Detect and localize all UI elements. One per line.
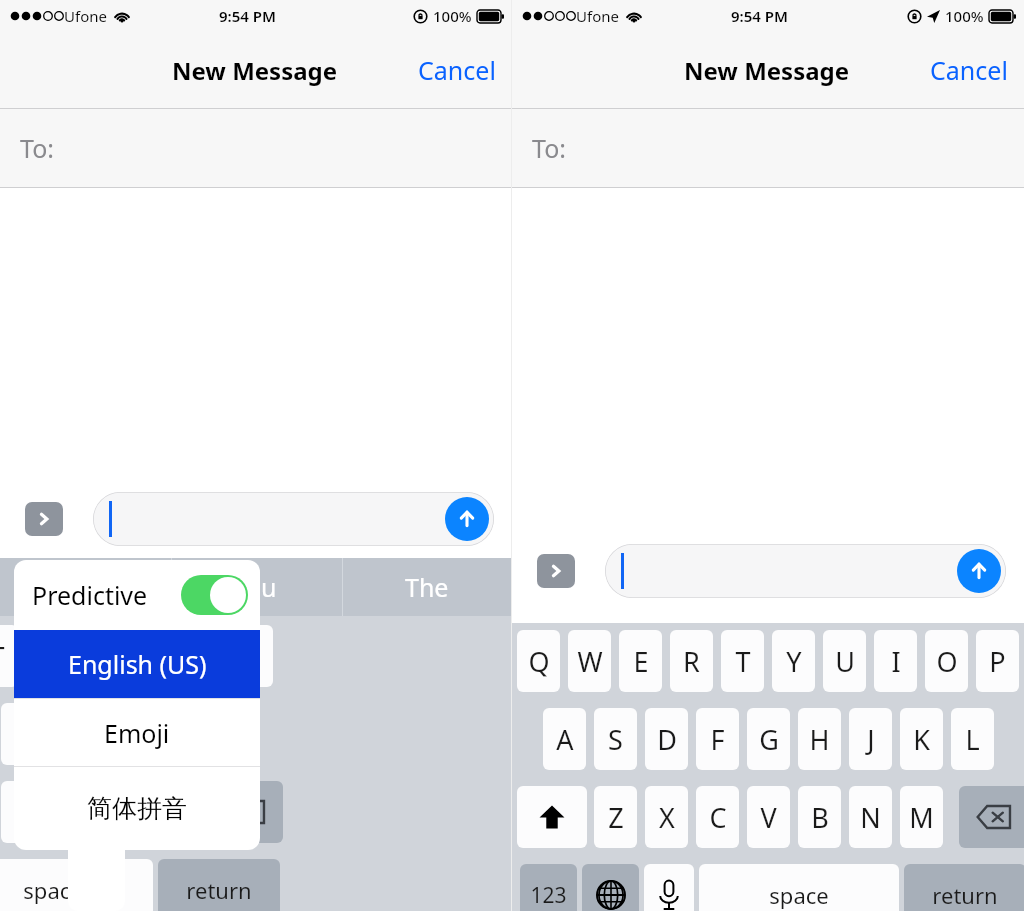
button[interactable]: return <box>158 859 280 911</box>
button[interactable]: K <box>154 703 197 765</box>
staticText: O <box>190 638 212 675</box>
button[interactable]: Backspace <box>213 781 283 843</box>
staticText: P <box>989 643 1006 680</box>
button[interactable]: S <box>594 708 637 770</box>
staticText: Ufone <box>576 6 619 26</box>
staticText: Predictive <box>32 578 148 612</box>
staticText: Cancel <box>930 53 1008 87</box>
button[interactable]: V <box>1 781 44 843</box>
button[interactable]: Predictive on <box>181 575 248 615</box>
button[interactable]: J <box>849 708 892 770</box>
button[interactable]: Predictive <box>14 560 260 630</box>
button[interactable]: Show apps <box>25 502 63 536</box>
staticText: 9:54 PM <box>731 6 788 26</box>
button[interactable]: G <box>1 703 44 765</box>
staticText: 9:54 PM <box>219 6 276 26</box>
button[interactable]: M <box>154 781 197 843</box>
button[interactable]: A <box>543 708 586 770</box>
button[interactable]: To: <box>512 109 1024 187</box>
staticText: D <box>657 721 677 758</box>
staticText: space <box>23 875 83 905</box>
staticText: 100% <box>945 6 984 26</box>
button[interactable]: B <box>52 781 95 843</box>
button[interactable]: To: <box>0 109 512 187</box>
button[interactable]: E <box>619 630 662 692</box>
button[interactable]: R <box>670 630 713 692</box>
button[interactable]: P <box>230 625 273 687</box>
button[interactable]: Cancel <box>914 41 1024 99</box>
button[interactable]: H <box>798 708 841 770</box>
button[interactable]: T <box>0 625 18 687</box>
button[interactable]: G <box>747 708 790 770</box>
button[interactable]: Show apps <box>537 554 575 588</box>
staticText: C <box>709 799 727 836</box>
button[interactable]: D <box>645 708 688 770</box>
button[interactable]: Emoji <box>14 699 260 766</box>
button[interactable]: Send <box>605 544 1006 598</box>
button[interactable]: English (US) <box>14 630 260 698</box>
button[interactable]: Q <box>517 630 560 692</box>
button[interactable]: Dictate <box>644 864 694 911</box>
button[interactable]: Z <box>594 786 637 848</box>
staticText: English (US) <box>68 647 207 681</box>
button[interactable]: N <box>849 786 892 848</box>
button[interactable]: L <box>951 708 994 770</box>
button[interactable]: space <box>699 864 899 911</box>
button[interactable]: Send <box>957 549 1001 593</box>
button[interactable]: 简体拼音 <box>14 767 260 850</box>
staticText: T <box>0 638 5 675</box>
button[interactable]: return <box>904 864 1024 911</box>
staticText: return <box>932 880 998 910</box>
button[interactable]: U <box>823 630 866 692</box>
staticText: To: <box>20 131 54 165</box>
staticText: W <box>577 643 603 680</box>
staticText: K <box>913 721 930 758</box>
button[interactable]: Y <box>772 630 815 692</box>
staticText: space <box>769 880 829 910</box>
button[interactable]: 123 <box>520 864 577 911</box>
button[interactable]: U <box>77 625 120 687</box>
button[interactable]: Backspace <box>959 786 1024 848</box>
button[interactable]: W <box>568 630 611 692</box>
button[interactable]: Shift <box>517 786 587 848</box>
staticText: To: <box>532 131 566 165</box>
button[interactable]: O <box>179 625 222 687</box>
staticText: M <box>909 799 934 836</box>
button[interactable]: C <box>696 786 739 848</box>
button[interactable]: X <box>645 786 688 848</box>
button[interactable]: N <box>103 781 146 843</box>
button[interactable]: J <box>103 703 146 765</box>
staticText: I <box>891 643 901 680</box>
button[interactable]: P <box>976 630 1019 692</box>
button[interactable]: Y <box>26 625 69 687</box>
button[interactable]: O <box>925 630 968 692</box>
button[interactable]: M <box>900 786 943 848</box>
button[interactable]: V <box>747 786 790 848</box>
button[interactable]: Switch keyboard <box>582 864 639 911</box>
button[interactable]: T <box>721 630 764 692</box>
button[interactable]: Send <box>445 497 489 541</box>
staticText: Y <box>786 643 802 680</box>
staticText: X <box>659 799 675 836</box>
button[interactable]: I <box>128 625 171 687</box>
staticText: return <box>186 875 252 905</box>
button[interactable]: K <box>900 708 943 770</box>
button[interactable]: F <box>696 708 739 770</box>
button[interactable]: space <box>0 859 153 911</box>
staticText: I <box>145 638 155 675</box>
button[interactable]: B <box>798 786 841 848</box>
button[interactable]: I <box>874 630 917 692</box>
staticText: Ufone <box>64 6 107 26</box>
staticText: U <box>89 638 109 675</box>
staticText: O <box>936 643 958 680</box>
staticText: T <box>735 643 751 680</box>
button[interactable]: Send <box>93 492 494 546</box>
staticText: 123 <box>530 881 567 910</box>
button[interactable]: Cancel <box>402 41 512 99</box>
